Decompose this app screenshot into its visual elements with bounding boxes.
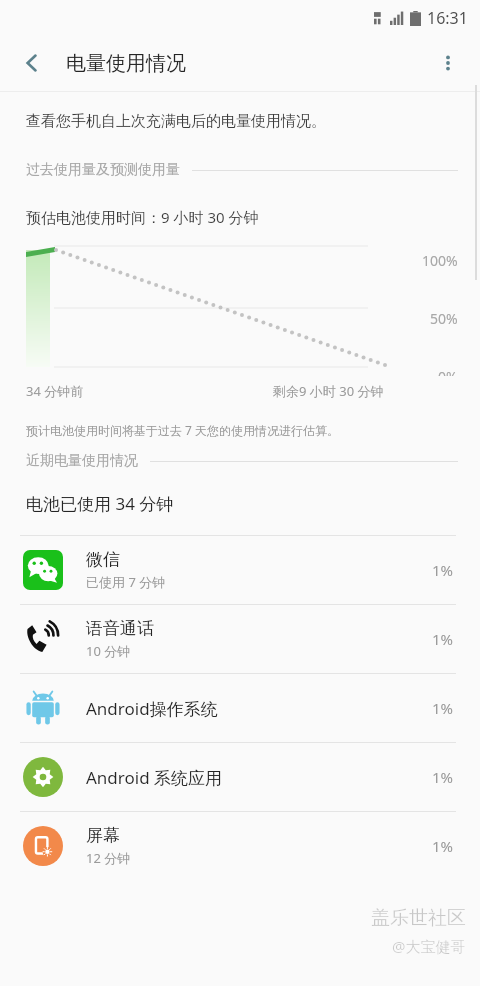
button[interactable]: More options — [424, 39, 472, 87]
staticText: 剩余9 小时 30 分钟 — [273, 382, 384, 400]
button[interactable]: 微信 — [0, 536, 480, 604]
button[interactable]: Android 系统应用 — [0, 743, 480, 811]
staticText: 微信 — [86, 549, 120, 570]
staticText: Android 系统应用 — [86, 766, 223, 789]
staticText: 屏幕 — [86, 825, 120, 846]
staticText: 12 分钟 — [86, 849, 131, 867]
staticText: 查看您手机自上次充满电后的电量使用情况。 — [26, 112, 326, 131]
staticText: 1% — [432, 767, 454, 787]
staticText: 语音通话 — [86, 618, 154, 639]
staticText: 盖乐世社区 — [371, 906, 466, 930]
staticText: 100% — [422, 251, 458, 270]
staticText: 34 分钟前 — [26, 382, 84, 400]
staticText: 1% — [432, 836, 454, 856]
staticText: 预估电池使用时间：9 小时 30 分钟 — [26, 207, 259, 227]
staticText: 50% — [430, 309, 458, 328]
button[interactable]: 语音通话 — [0, 605, 480, 673]
staticText: 预计电池使用时间将基于过去 7 天您的使用情况进行估算。 — [26, 422, 340, 438]
staticText: 近期电量使用情况 — [26, 452, 138, 470]
button[interactable]: Back — [8, 39, 56, 87]
staticText: 1% — [432, 560, 454, 580]
button[interactable]: 屏幕 — [0, 812, 480, 880]
staticText: 过去使用量及预测使用量 — [26, 161, 180, 179]
button[interactable]: Android操作系统 — [0, 674, 480, 742]
staticText: 电量使用情况 — [66, 51, 186, 76]
staticText: 0% — [438, 367, 458, 376]
staticText: Android操作系统 — [86, 697, 218, 720]
staticText: 电池已使用 34 分钟 — [26, 492, 174, 515]
staticText: 1% — [432, 629, 454, 649]
staticText: 16:31 — [427, 7, 468, 29]
staticText: 已使用 7 分钟 — [86, 573, 166, 591]
staticText: 1% — [432, 698, 454, 718]
staticText: @大宝健哥 — [392, 936, 466, 956]
staticText: 10 分钟 — [86, 642, 131, 660]
